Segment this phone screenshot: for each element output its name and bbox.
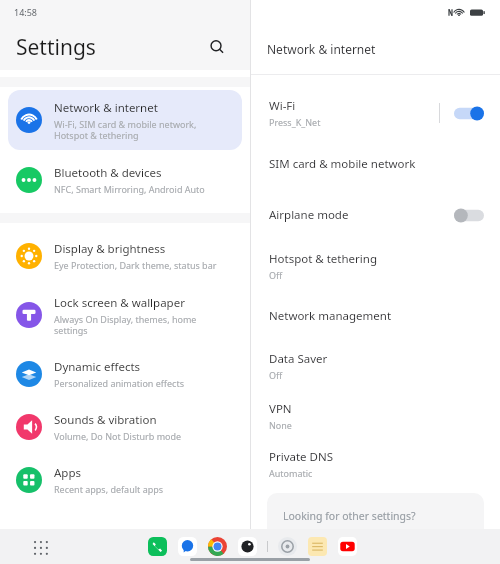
button[interactable]: Camera	[237, 536, 258, 557]
staticText: VPN	[269, 401, 292, 417]
staticText: Network & internet	[267, 41, 376, 57]
staticText: Airplane mode	[269, 207, 349, 223]
staticText: Apps	[54, 465, 82, 481]
staticText: 14:58	[14, 6, 38, 18]
staticText: None	[269, 419, 292, 431]
button[interactable]: Wi-Fi	[251, 87, 500, 139]
button[interactable]: Display & brightness	[8, 232, 242, 280]
staticText: Private DNS	[269, 449, 334, 465]
staticText: Wi-Fi, SIM card & mobile network, Hotspo…	[54, 118, 197, 141]
staticText: Press_K_Net	[269, 116, 321, 128]
button[interactable]: Notes	[307, 536, 328, 557]
staticText: Lock screen & wallpaper	[54, 295, 185, 311]
button[interactable]: Network & internet	[8, 90, 242, 150]
button[interactable]: Hotspot & tethering	[251, 241, 500, 291]
button[interactable]: Airplane mode	[251, 189, 500, 241]
staticText: Off	[269, 269, 283, 281]
button[interactable]: Apps	[8, 456, 242, 504]
button[interactable]: Off	[454, 208, 484, 223]
staticText: Off	[269, 369, 283, 381]
staticText: Wi-Fi	[269, 98, 296, 114]
button[interactable]: Looking for other settings?	[267, 493, 484, 539]
staticText: Looking for other settings?	[283, 509, 416, 523]
staticText: Dynamic effects	[54, 359, 141, 375]
staticText: Display & brightness	[54, 241, 166, 257]
staticText: Settings	[16, 33, 96, 62]
button[interactable]: Settings	[277, 536, 298, 557]
button[interactable]: Bluetooth & devices	[8, 156, 242, 204]
button[interactable]: Sounds & vibration	[8, 403, 242, 451]
button[interactable]: Messages	[177, 536, 198, 557]
button[interactable]: All apps	[30, 537, 50, 557]
button[interactable]: Search	[202, 32, 232, 62]
button[interactable]: VPN	[251, 391, 500, 441]
staticText: Volume, Do Not Disturb mode	[54, 430, 182, 442]
staticText: Personalized animation effects	[54, 377, 184, 389]
button[interactable]: Phone	[147, 536, 168, 557]
staticText: Data Saver	[269, 351, 328, 367]
button[interactable]: Lock screen & wallpaper	[8, 285, 242, 345]
staticText: SIM card & mobile network	[269, 156, 416, 172]
button[interactable]: On	[454, 106, 484, 121]
button[interactable]: Network management	[251, 291, 500, 341]
staticText: Always On Display, themes, home settings	[54, 313, 197, 336]
staticText: Recent apps, default apps	[54, 483, 164, 495]
button[interactable]: Data Saver	[251, 341, 500, 391]
staticText: Hotspot & tethering	[269, 251, 377, 267]
staticText: NFC, Smart Mirroring, Android Auto	[54, 183, 205, 195]
staticText: Sounds & vibration	[54, 412, 157, 428]
button[interactable]: YouTube	[337, 536, 358, 557]
button[interactable]: Private DNS	[251, 441, 500, 487]
button[interactable]: Chrome	[207, 536, 228, 557]
staticText: Eye Protection, Dark theme, status bar	[54, 259, 217, 271]
staticText: Bluetooth & devices	[54, 165, 162, 181]
staticText: Automatic	[269, 467, 313, 479]
staticText: Network & internet	[54, 100, 158, 116]
button[interactable]: Dynamic effects	[8, 350, 242, 398]
button[interactable]: SIM card & mobile network	[251, 139, 500, 189]
staticText: Network management	[269, 308, 392, 324]
